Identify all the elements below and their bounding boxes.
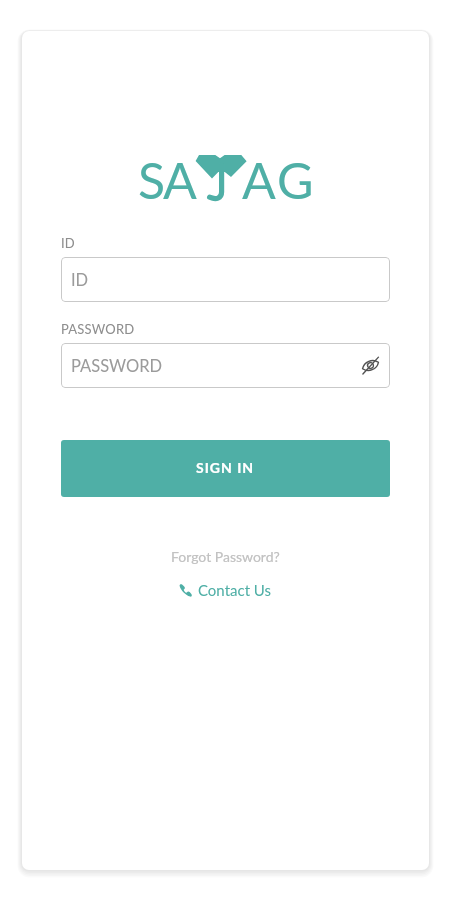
staticText: S bbox=[138, 150, 166, 199]
button[interactable]: SIGN IN bbox=[61, 440, 390, 497]
button[interactable]: Contact Us bbox=[173, 577, 278, 603]
staticText: ID bbox=[61, 235, 75, 251]
button[interactable]: PASSWORD bbox=[61, 343, 390, 388]
button[interactable]: Forgot Password? bbox=[165, 544, 286, 569]
staticText: G bbox=[277, 150, 314, 199]
staticText: Forgot Password? bbox=[171, 548, 280, 565]
staticText: PASSWORD bbox=[71, 356, 163, 376]
staticText: Contact Us bbox=[198, 581, 272, 599]
staticText: SIGN IN bbox=[196, 459, 255, 476]
staticText: PASSWORD bbox=[61, 321, 135, 337]
staticText: A bbox=[242, 150, 276, 199]
staticText: A bbox=[163, 150, 197, 199]
staticText: ID bbox=[71, 270, 89, 290]
button[interactable]: ID bbox=[61, 257, 390, 302]
button[interactable]: Show password bbox=[361, 356, 380, 375]
